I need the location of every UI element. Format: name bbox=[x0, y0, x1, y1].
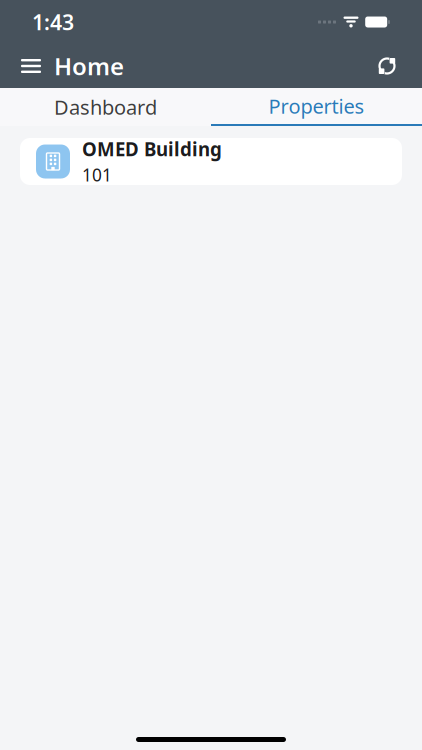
button[interactable]: Dashboard bbox=[0, 89, 211, 125]
button[interactable]: Refresh bbox=[368, 47, 406, 85]
staticText: Home bbox=[54, 50, 124, 82]
button[interactable]: OMED Building bbox=[20, 138, 402, 185]
staticText: 101 bbox=[82, 163, 112, 186]
button[interactable]: Properties bbox=[211, 88, 422, 126]
staticText: 1:43 bbox=[32, 8, 74, 36]
staticText: OMED Building bbox=[82, 137, 222, 161]
button[interactable]: Home bbox=[16, 42, 128, 90]
staticText: Dashboard bbox=[54, 94, 157, 120]
staticText: Properties bbox=[268, 93, 364, 119]
